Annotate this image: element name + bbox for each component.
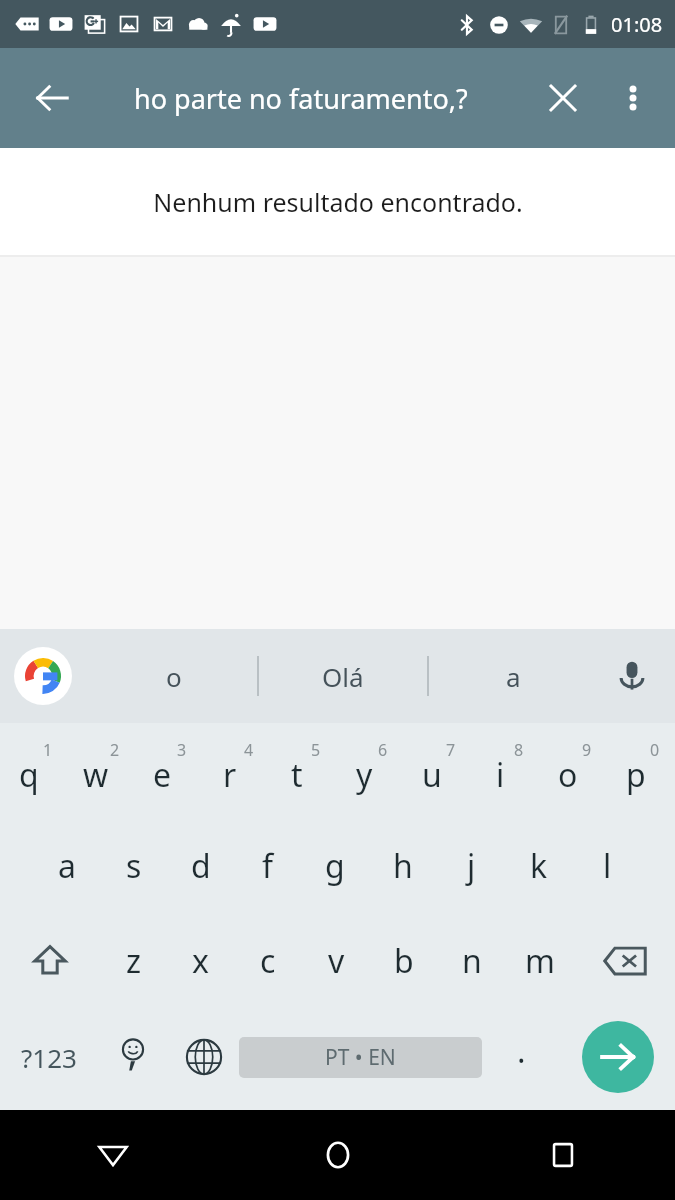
- staticText: b: [394, 939, 414, 983]
- button[interactable]: r: [201, 723, 268, 818]
- staticText: 8: [514, 739, 524, 761]
- button[interactable]: Back: [0, 1110, 225, 1200]
- button[interactable]: u: [403, 723, 471, 818]
- staticText: y: [356, 753, 373, 797]
- button[interactable]: f: [234, 818, 301, 913]
- staticText: s: [126, 844, 142, 888]
- button[interactable]: e: [134, 723, 201, 818]
- button[interactable]: v: [302, 913, 370, 1008]
- button[interactable]: ?123: [0, 1008, 97, 1106]
- staticText: u: [422, 753, 442, 797]
- button[interactable]: j: [437, 818, 505, 913]
- button[interactable]: q: [0, 723, 67, 818]
- staticText: o: [166, 659, 182, 694]
- staticText: 9: [582, 739, 592, 761]
- button[interactable]: t: [268, 723, 335, 818]
- staticText: 7: [446, 739, 456, 761]
- button[interactable]: Change language: [168, 1008, 239, 1106]
- button[interactable]: s: [100, 818, 167, 913]
- button[interactable]: More options: [605, 70, 661, 126]
- staticText: n: [462, 939, 482, 983]
- button[interactable]: d: [167, 818, 234, 913]
- staticText: e: [153, 753, 172, 797]
- button[interactable]: i: [471, 723, 539, 818]
- staticText: 4: [244, 739, 254, 761]
- button[interactable]: h: [369, 818, 437, 913]
- button[interactable]: a: [429, 629, 597, 723]
- staticText: t: [291, 753, 303, 797]
- button[interactable]: .: [482, 1008, 561, 1106]
- button[interactable]: m: [506, 913, 574, 1008]
- button[interactable]: o: [539, 723, 607, 818]
- button[interactable]: p: [607, 723, 675, 818]
- button[interactable]: Voice input: [605, 649, 659, 703]
- staticText: ho parte no faturamento,?: [134, 80, 468, 117]
- staticText: ?123: [21, 1040, 77, 1075]
- staticText: f: [262, 844, 274, 888]
- button[interactable]: x: [167, 913, 234, 1008]
- button[interactable]: l: [573, 818, 641, 913]
- staticText: v: [328, 939, 345, 983]
- staticText: g: [325, 844, 345, 888]
- staticText: h: [393, 844, 413, 888]
- button[interactable]: Nenhum resultado encontrado.: [0, 148, 675, 255]
- button[interactable]: w: [67, 723, 134, 818]
- button[interactable]: Backspace: [574, 913, 675, 1008]
- staticText: 01:08: [611, 11, 663, 38]
- button[interactable]: Enter: [582, 1021, 654, 1093]
- button[interactable]: o: [90, 629, 257, 723]
- staticText: 2: [110, 739, 120, 761]
- button[interactable]: b: [370, 913, 438, 1008]
- staticText: l: [603, 844, 612, 888]
- button[interactable]: k: [505, 818, 573, 913]
- button[interactable]: y: [335, 723, 403, 818]
- staticText: 3: [177, 739, 187, 761]
- staticText: .: [517, 1029, 526, 1073]
- staticText: j: [467, 844, 476, 888]
- button[interactable]: Emoji and comma: [97, 1008, 168, 1106]
- button[interactable]: c: [234, 913, 302, 1008]
- staticText: 0: [650, 739, 660, 761]
- button[interactable]: z: [100, 913, 167, 1008]
- button[interactable]: Olá: [259, 629, 427, 723]
- button[interactable]: Clear search: [535, 70, 591, 126]
- staticText: 5: [311, 739, 321, 761]
- staticText: Nenhum resultado encontrado.: [153, 185, 523, 219]
- button[interactable]: a: [33, 818, 100, 913]
- staticText: x: [192, 939, 209, 983]
- staticText: d: [191, 844, 211, 888]
- staticText: r: [223, 753, 237, 797]
- button[interactable]: Recent apps: [450, 1110, 675, 1200]
- button[interactable]: Shift: [0, 913, 100, 1008]
- staticText: q: [19, 753, 39, 797]
- staticText: w: [83, 753, 109, 797]
- button[interactable]: Back: [22, 68, 82, 128]
- staticText: 1: [43, 739, 53, 761]
- staticText: m: [525, 939, 555, 983]
- button[interactable]: g: [301, 818, 369, 913]
- staticText: 6: [378, 739, 388, 761]
- staticText: a: [506, 659, 521, 694]
- staticText: o: [558, 753, 578, 797]
- staticText: k: [530, 844, 548, 888]
- button[interactable]: Google search: [14, 647, 72, 705]
- button[interactable]: PT • EN: [239, 1037, 482, 1078]
- staticText: p: [626, 753, 646, 797]
- staticText: PT • EN: [325, 1043, 396, 1072]
- staticText: Olá: [322, 659, 364, 694]
- button[interactable]: n: [438, 913, 506, 1008]
- staticText: a: [58, 844, 76, 888]
- button[interactable]: Home: [225, 1110, 450, 1200]
- staticText: i: [496, 753, 505, 797]
- staticText: c: [260, 939, 276, 983]
- staticText: z: [126, 939, 142, 983]
